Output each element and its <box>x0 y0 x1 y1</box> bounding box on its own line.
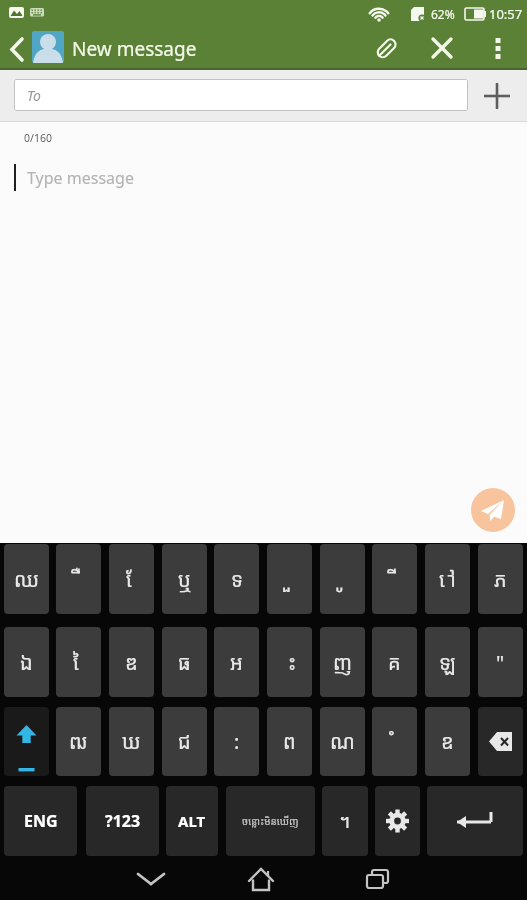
button[interactable]: ៃ <box>56 627 101 697</box>
staticText: ៃ <box>73 649 84 676</box>
staticText: ឃ <box>122 728 141 755</box>
staticText: ី <box>392 566 398 593</box>
button[interactable]: ែ <box>109 544 154 614</box>
staticText: ជ <box>178 728 191 755</box>
staticText: ឬ <box>178 566 192 593</box>
staticText: To <box>27 86 41 105</box>
button[interactable]: To <box>14 79 468 111</box>
button[interactable]: ឌ <box>109 627 154 697</box>
staticText: អ <box>230 649 243 676</box>
staticText: ចន្លោះមិនឃើញ <box>242 814 299 828</box>
staticText: Type message <box>27 167 134 189</box>
button[interactable]: ។ <box>322 786 368 856</box>
button[interactable]: គ <box>372 627 417 697</box>
button[interactable] <box>370 31 404 65</box>
staticText: ទ <box>231 566 243 593</box>
button[interactable]: : <box>214 707 259 776</box>
staticText: 10:57 <box>489 5 523 23</box>
button[interactable]: ឺ <box>56 544 101 614</box>
button[interactable] <box>127 861 175 900</box>
staticText: ូ <box>340 566 346 593</box>
staticText: ឧ <box>441 728 454 755</box>
button[interactable] <box>478 707 523 776</box>
staticText: ។ <box>339 808 351 834</box>
staticText: ភ <box>494 566 507 593</box>
button[interactable] <box>375 786 420 856</box>
button[interactable]: ី <box>372 544 417 614</box>
button[interactable]: ព <box>267 707 312 776</box>
button[interactable]: អ <box>214 627 259 697</box>
button[interactable] <box>425 31 459 65</box>
staticText: ឌ <box>125 649 138 676</box>
button[interactable] <box>237 861 285 900</box>
button[interactable] <box>427 786 523 856</box>
staticText: ធ <box>178 649 191 676</box>
button[interactable]: ធ <box>162 627 207 697</box>
button[interactable]: ឈ <box>4 544 49 614</box>
staticText: គ <box>388 649 401 676</box>
staticText: : <box>234 728 240 755</box>
button[interactable]: ញ <box>320 627 365 697</box>
staticText: ៅ <box>439 566 456 593</box>
button[interactable]: ឯ <box>4 627 49 697</box>
staticText: ែ <box>126 566 137 593</box>
button[interactable]: ជ <box>162 707 207 776</box>
staticText: 0/160 <box>24 131 52 145</box>
button[interactable] <box>484 31 512 65</box>
button[interactable]: ៅ <box>425 544 470 614</box>
button[interactable]: ំ <box>372 707 417 776</box>
staticText: ឍ <box>69 728 88 755</box>
button[interactable]: ?123 <box>86 786 159 856</box>
staticText: ALT <box>178 811 206 831</box>
button[interactable] <box>4 707 49 776</box>
staticText: New message <box>72 36 197 62</box>
button[interactable]: ឧ <box>425 707 470 776</box>
button[interactable] <box>352 861 400 900</box>
staticText: ំ <box>392 728 398 755</box>
staticText: ឯ <box>20 649 33 676</box>
staticText: ENG <box>24 810 58 832</box>
button[interactable]: ទ <box>214 544 259 614</box>
button[interactable]: ណ <box>320 707 365 776</box>
button[interactable] <box>478 78 516 114</box>
button[interactable]: ចន្លោះមិនឃើញ <box>226 786 315 856</box>
staticText: ណ <box>330 728 355 755</box>
button[interactable]: ឍ <box>56 707 101 776</box>
button[interactable]: ឡ <box>425 627 470 697</box>
button[interactable]: ឃ <box>109 707 154 776</box>
button[interactable]: ALT <box>166 786 218 856</box>
staticText: ?123 <box>105 810 141 832</box>
staticText: " <box>496 649 505 676</box>
button[interactable]: ះ <box>267 627 312 697</box>
staticText: ព <box>283 728 296 755</box>
staticText: ះ <box>283 649 296 676</box>
button[interactable]: ួ <box>267 544 312 614</box>
staticText: ួ <box>287 566 293 593</box>
button[interactable]: " <box>478 627 523 697</box>
staticText: ញ <box>333 649 353 676</box>
button[interactable]: ភ <box>478 544 523 614</box>
button[interactable]: ENG <box>4 786 77 856</box>
button[interactable] <box>471 488 515 532</box>
staticText: 62% <box>431 6 455 22</box>
button[interactable]: ឬ <box>162 544 207 614</box>
button[interactable] <box>4 34 36 66</box>
staticText: ឺ <box>76 566 82 593</box>
staticText: ឈ <box>14 566 40 593</box>
staticText: ឡ <box>439 649 456 676</box>
button[interactable]: ូ <box>320 544 365 614</box>
